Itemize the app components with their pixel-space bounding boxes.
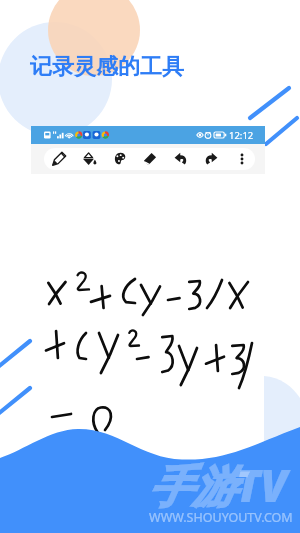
staticText: 记录灵感的工具 [30, 53, 184, 81]
staticText: 手游TV [148, 455, 288, 515]
staticText: 12:12 [229, 129, 254, 142]
staticText: WWW.SHOUYOUTV.COM [149, 509, 293, 526]
